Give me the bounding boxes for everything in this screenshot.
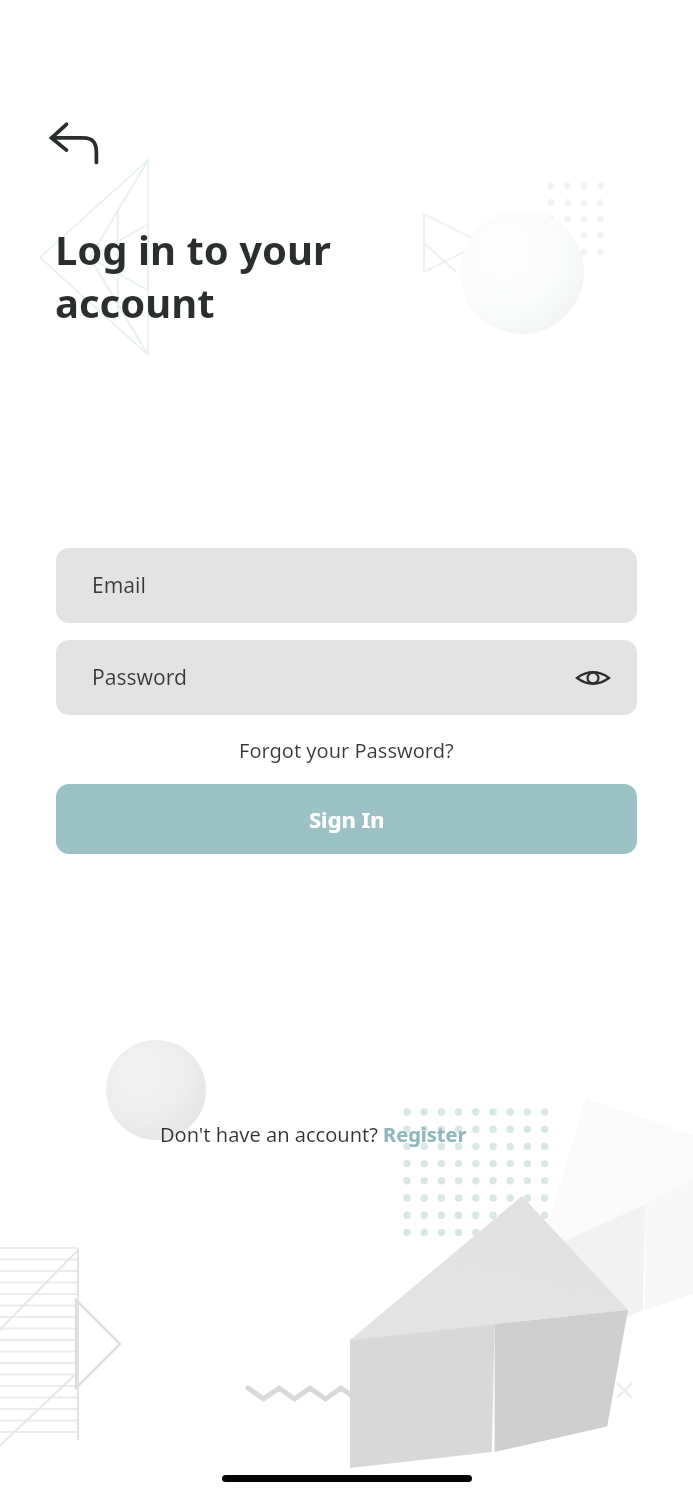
button[interactable]: Don't have an account? Register <box>160 1114 534 1154</box>
staticText: Sign In <box>309 804 385 834</box>
button[interactable]: Show password <box>565 650 621 706</box>
button[interactable]: Back <box>42 108 110 176</box>
staticText: Password <box>92 663 187 692</box>
staticText: Log in to your account <box>55 222 455 329</box>
staticText: Email <box>92 571 146 600</box>
staticText: Don't have an account? Register <box>160 1121 467 1148</box>
button[interactable]: Sign In <box>56 784 637 854</box>
staticText: Forgot your Password? <box>239 737 454 764</box>
button[interactable]: Password <box>56 640 637 715</box>
button[interactable]: Email <box>56 548 637 623</box>
button[interactable]: Forgot your Password? <box>206 730 486 770</box>
